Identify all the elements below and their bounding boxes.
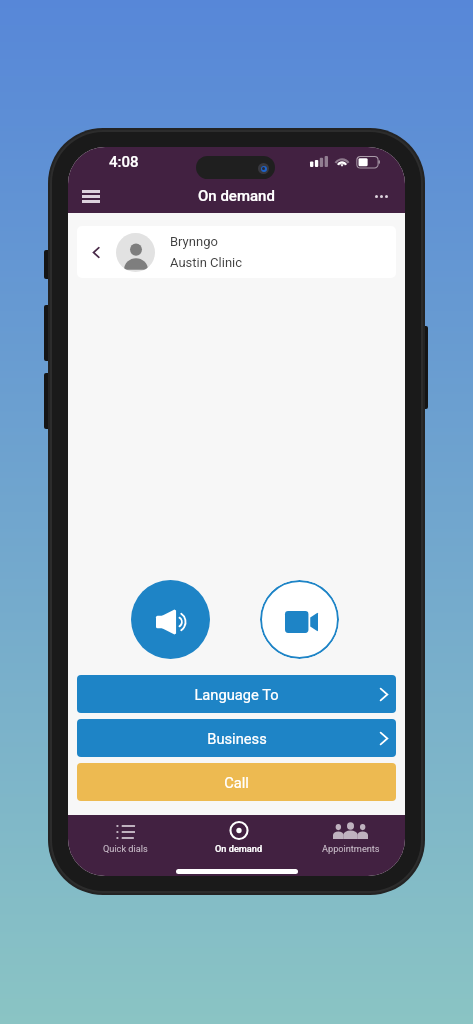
staticText: 4:08: [109, 153, 139, 171]
staticText: On demand: [215, 843, 263, 854]
staticText: Quick dials: [103, 843, 148, 854]
button[interactable]: Language To: [77, 675, 396, 713]
button[interactable]: Video call: [260, 580, 339, 659]
staticText: Brynngo: [170, 234, 218, 249]
button[interactable]: Audio call: [131, 580, 210, 659]
button[interactable]: Quick dials: [68, 815, 182, 854]
staticText: Austin Clinic: [170, 255, 243, 270]
button[interactable]: On demand: [182, 815, 296, 854]
button[interactable]: Appointments: [296, 815, 405, 854]
button[interactable]: Call: [77, 763, 396, 801]
staticText: Language To: [194, 686, 279, 703]
button[interactable]: Business: [77, 719, 396, 757]
staticText: Appointments: [322, 843, 380, 854]
button[interactable]: Menu: [74, 179, 108, 213]
button[interactable]: Brynngo: [77, 226, 396, 278]
staticText: Business: [207, 730, 267, 747]
staticText: On demand: [198, 187, 275, 205]
staticText: Call: [224, 774, 249, 791]
button[interactable]: More options: [365, 179, 397, 213]
